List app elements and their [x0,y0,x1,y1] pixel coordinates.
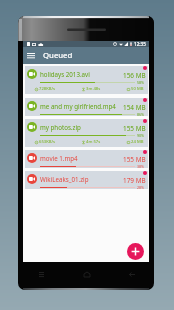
staticText: 28% [137,185,145,190]
staticText: holidays 2013.avi [40,70,90,78]
staticText: WikiLeaks_01.zip [40,175,89,183]
staticText: 653KB/s [39,139,56,145]
button[interactable]: Open navigation drawer [23,47,39,64]
staticText: 154 MB [123,103,146,112]
staticText: 3m 48s [86,86,101,92]
staticText: 58% [137,80,145,85]
button[interactable]: holidays 2013.avi [25,66,148,94]
staticText: 156 MB [123,71,146,80]
staticText: 50 MB [131,86,144,92]
button[interactable]: WikiLeaks_01.zip [25,171,148,189]
staticText: 38% [137,164,145,169]
staticText: me and my girlfriend.mp4 [40,102,116,110]
staticText: 4m 57s [86,139,101,145]
staticText: Queued [43,50,73,61]
staticText: 86% [137,112,145,117]
staticText: my photos.zip [40,123,81,131]
button[interactable]: movie 1.mp4 [25,150,148,168]
staticText: 728KB/s [39,86,56,92]
button[interactable]: Recent apps [18,265,64,283]
staticText: 12:35 [134,41,146,47]
button[interactable]: me and my girlfriend.mp4 [25,98,148,116]
staticText: 155 MB [123,124,146,133]
staticText: 24 MB [131,139,144,145]
button[interactable]: my photos.zip [25,119,148,147]
staticText: movie 1.mp4 [40,154,78,162]
staticText: 90% [137,133,145,138]
staticText: 179 MB [123,176,146,185]
staticText: 155 MB [123,155,146,164]
button[interactable]: Add download [127,243,144,260]
